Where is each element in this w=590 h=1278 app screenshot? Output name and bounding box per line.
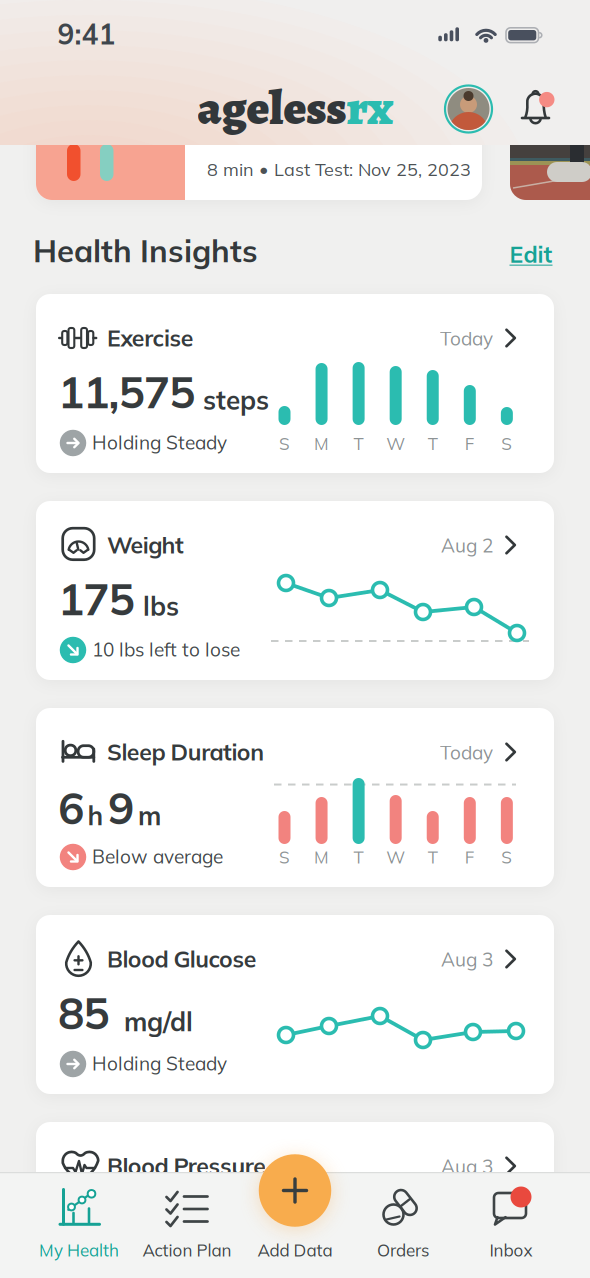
button[interactable]: Blood Glucose — [36, 915, 590, 1278]
button[interactable]: My Health — [26, 1172, 132, 1278]
staticText: Blood Pressure — [107, 1151, 266, 1180]
staticText: Below average — [92, 844, 223, 868]
staticText: 8 min • Last Test: Nov 25, 2023 — [207, 158, 471, 181]
staticText: F — [465, 846, 475, 868]
staticText: T — [428, 846, 438, 868]
button[interactable]: Inbox — [458, 1172, 564, 1278]
staticText: Inbox — [489, 1239, 532, 1261]
staticText: Health Insights — [33, 231, 258, 270]
staticText: h — [87, 799, 103, 832]
staticText: Holding Steady — [92, 430, 227, 454]
staticText: Blood Glucose — [107, 944, 257, 973]
staticText: W — [386, 433, 405, 454]
staticText: W — [386, 846, 405, 868]
staticText: Aug 3 — [441, 1154, 493, 1178]
staticText: Holding Steady — [92, 1051, 227, 1075]
staticText: m — [138, 799, 161, 832]
staticText: steps — [203, 383, 269, 416]
staticText: mg/dl — [124, 1005, 193, 1038]
staticText: M — [314, 846, 329, 868]
staticText: T — [354, 433, 364, 454]
button[interactable]: Blood Pressure — [36, 1122, 590, 1278]
staticText: 85 — [58, 985, 109, 1040]
staticText: Weight — [107, 530, 184, 559]
staticText: Aug 3 — [441, 947, 493, 971]
button[interactable]: Sleep Duration — [36, 708, 590, 1278]
staticText: Edit — [509, 240, 552, 268]
staticText: 11,575 — [58, 364, 195, 419]
staticText: S — [501, 846, 512, 868]
staticText: Exercise — [107, 323, 194, 352]
button[interactable]: Next card — [510, 100, 590, 200]
button[interactable]: Action Plan — [134, 1172, 240, 1278]
staticText: M — [314, 433, 329, 454]
staticText: F — [465, 433, 475, 454]
staticText: rx — [346, 75, 392, 141]
staticText: S — [279, 433, 290, 454]
staticText: Sleep Duration — [107, 737, 264, 766]
staticText: My Health — [39, 1239, 119, 1261]
button[interactable]: Latest test — [36, 100, 482, 200]
button[interactable]: Add Data — [259, 1154, 331, 1227]
staticText: ageless — [197, 75, 346, 141]
staticText: Aug 2 — [441, 533, 493, 557]
button[interactable]: Orders — [350, 1172, 456, 1278]
staticText: 6 — [58, 780, 84, 835]
button[interactable]: Weight — [36, 501, 590, 1278]
staticText: 9 — [108, 780, 134, 835]
button[interactable]: Edit — [509, 240, 552, 268]
staticText: Action Plan — [142, 1239, 231, 1261]
staticText: lbs — [143, 589, 179, 622]
staticText: 10 lbs left to lose — [92, 637, 240, 661]
staticText: Add Data — [257, 1239, 332, 1261]
staticText: T — [428, 433, 438, 454]
staticText: 9:41 — [57, 16, 115, 51]
button[interactable]: Exercise — [36, 294, 590, 1278]
staticText: Orders — [377, 1239, 429, 1261]
staticText: S — [501, 433, 512, 454]
button[interactable]: Notifications — [515, 93, 555, 127]
staticText: Today — [440, 326, 493, 350]
staticText: S — [279, 846, 290, 868]
staticText: 175 — [58, 571, 134, 626]
staticText: T — [354, 846, 364, 868]
staticText: Today — [440, 740, 493, 764]
button[interactable]: Profile — [444, 84, 492, 132]
